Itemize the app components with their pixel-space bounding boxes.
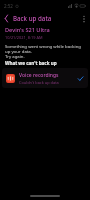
staticText: What we can't back up (5, 60, 57, 66)
other: Voice Recorder app icon (6, 74, 15, 83)
staticText: Something went wrong while backing up yo… (5, 43, 85, 59)
staticText: Voice recordings (19, 72, 59, 79)
staticText: 2:52 (4, 3, 13, 9)
staticText: Back up data (13, 14, 52, 22)
staticText: Couldn't back up data (19, 80, 59, 85)
button[interactable]: Voice Recorder app icon (2, 68, 88, 88)
button[interactable]: What we can't back up (5, 60, 57, 66)
button[interactable]: More options (77, 12, 90, 25)
staticText: Devin's S21 Ultra (5, 26, 50, 34)
staticText: 10/21/2021, 8:19 AM (5, 35, 43, 40)
button[interactable]: Back (0, 12, 13, 25)
